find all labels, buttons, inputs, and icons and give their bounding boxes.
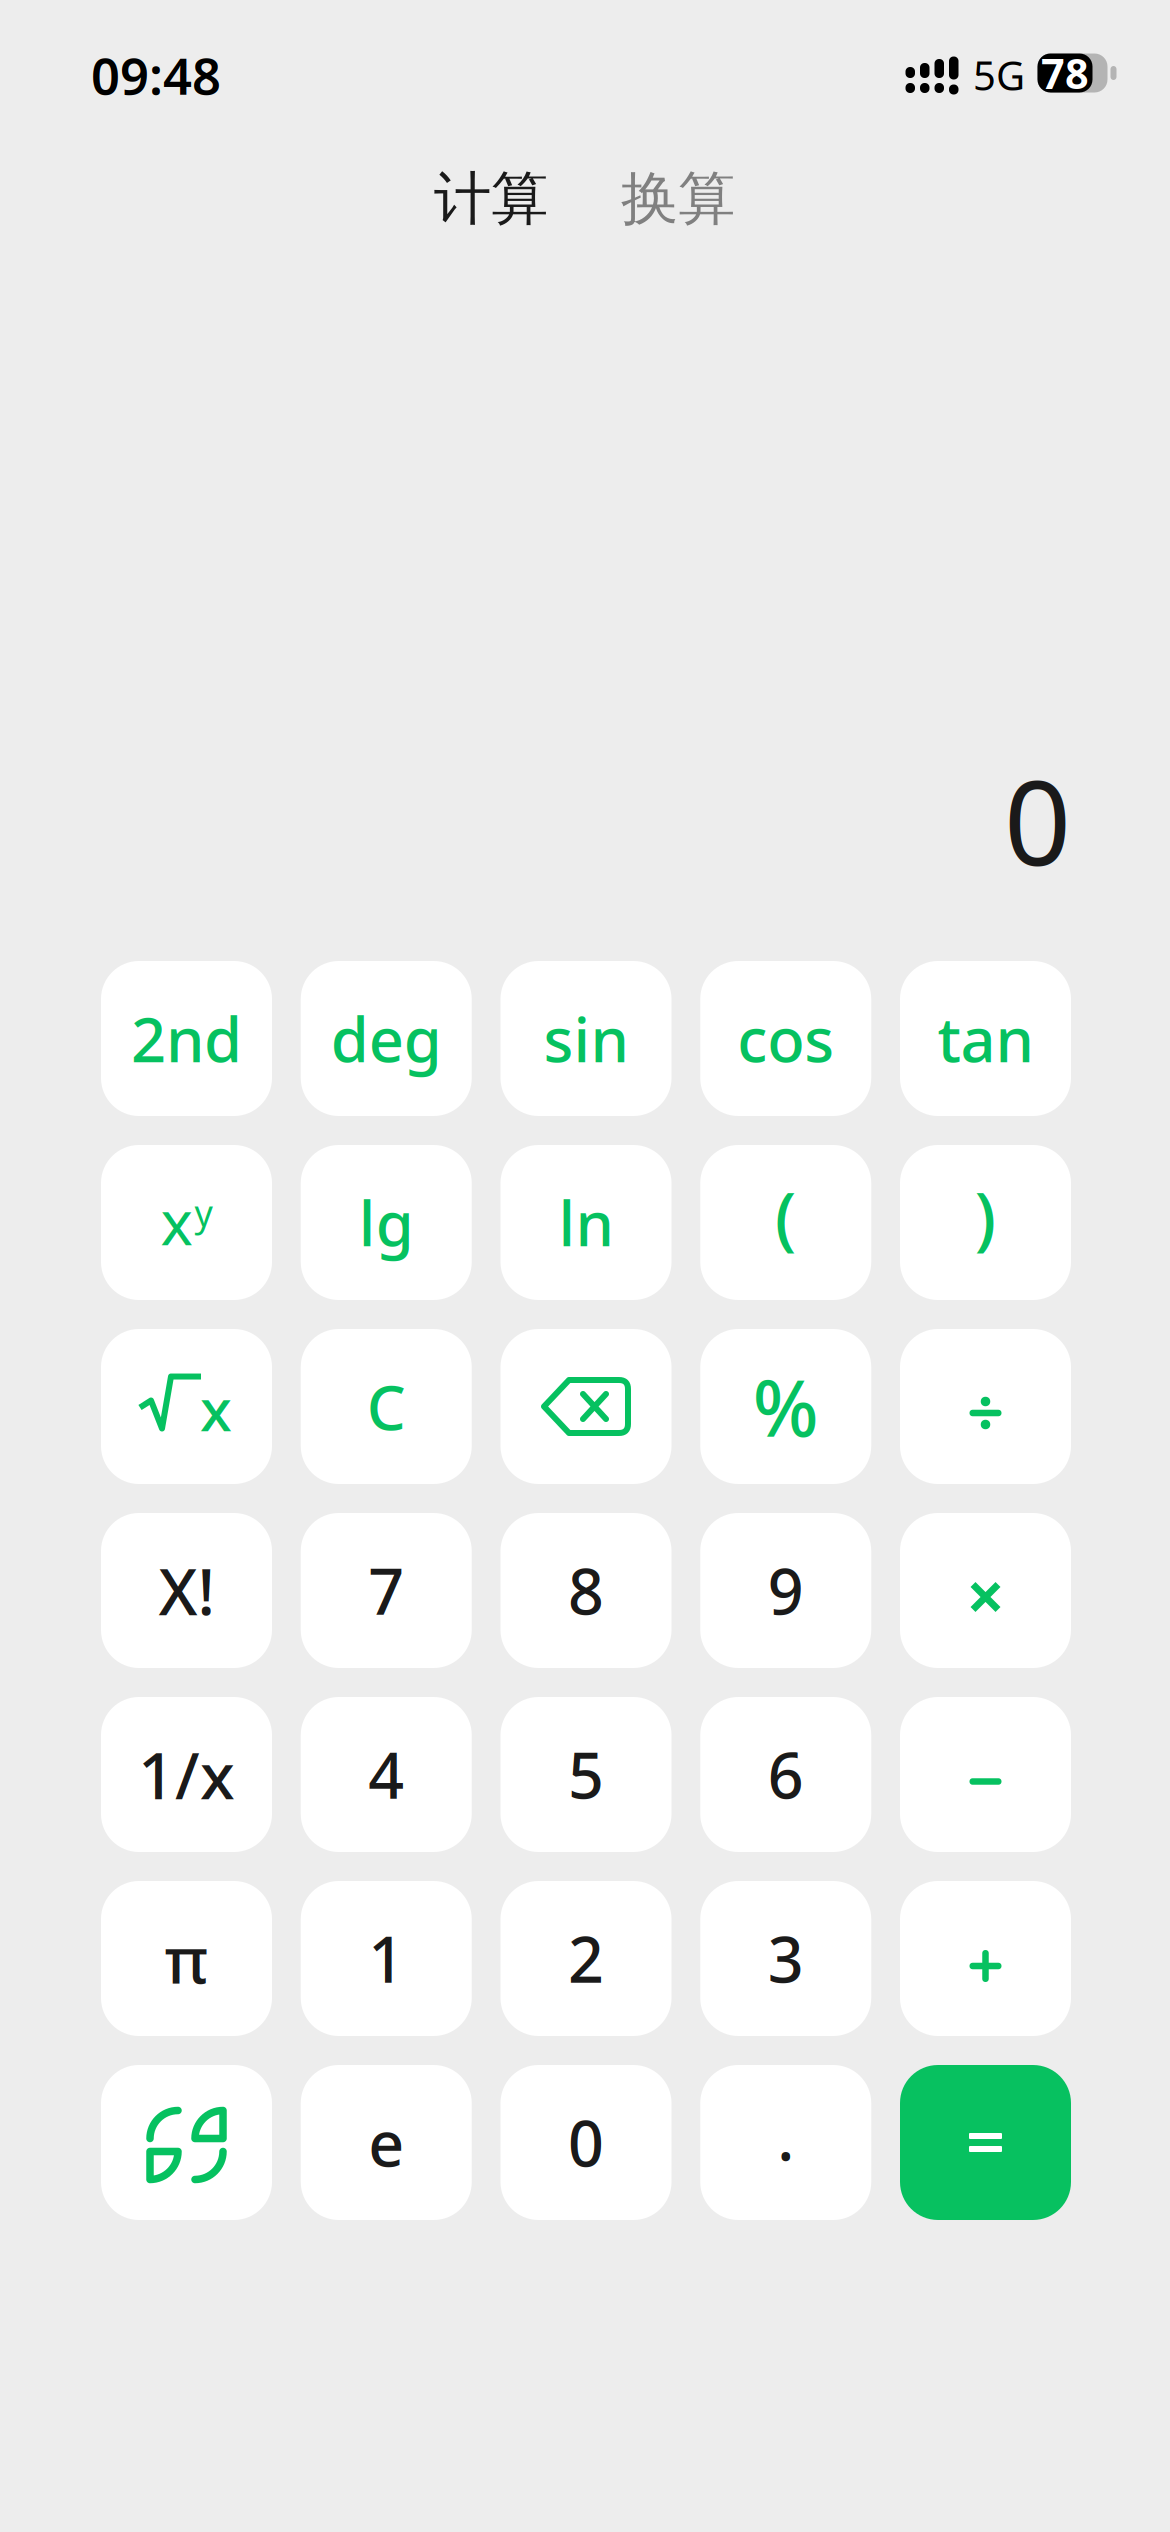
staticText: sin	[543, 998, 628, 1079]
button[interactable]: 7	[301, 1513, 472, 1668]
staticText: X!	[158, 1548, 214, 1633]
button[interactable]: Subtract	[900, 1697, 1071, 1852]
button[interactable]: %	[700, 1329, 871, 1484]
staticText: 4	[368, 1733, 404, 1816]
staticText: 6	[768, 1733, 804, 1816]
button[interactable]: )	[900, 1145, 1071, 1300]
button[interactable]: lg	[301, 1145, 472, 1300]
button[interactable]: 4	[301, 1697, 472, 1852]
button[interactable]: 计算	[421, 154, 561, 244]
button[interactable]: 8	[500, 1513, 671, 1668]
staticText: ln	[558, 1182, 613, 1263]
button[interactable]: 6	[700, 1697, 871, 1852]
staticText: 1/x	[138, 1732, 235, 1817]
button[interactable]: .	[700, 2065, 871, 2220]
staticText: 0	[568, 2101, 604, 2184]
button[interactable]: Add	[900, 1881, 1071, 2036]
button[interactable]: C	[301, 1329, 472, 1484]
staticText: tan	[937, 998, 1033, 1079]
button[interactable]: Scan	[101, 2065, 272, 2220]
staticText: 0	[1004, 742, 1071, 898]
button[interactable]: 1/x	[101, 1697, 272, 1852]
staticText: (	[775, 1169, 797, 1262]
button[interactable]: Equals	[900, 2065, 1071, 2220]
button[interactable]: π	[101, 1881, 272, 2036]
staticText: cos	[737, 998, 834, 1079]
button[interactable]: tan	[900, 961, 1071, 1116]
button[interactable]: 1	[301, 1881, 472, 2036]
button[interactable]: Multiply	[900, 1513, 1071, 1668]
staticText: 5	[568, 1733, 604, 1816]
staticText: x	[160, 1181, 192, 1262]
staticText: π	[164, 1916, 208, 2001]
button[interactable]: X!	[101, 1513, 272, 1668]
staticText: e	[368, 2101, 404, 2184]
staticText: 换算	[621, 164, 735, 234]
button[interactable]: Delete	[500, 1329, 671, 1484]
staticText: 8	[568, 1549, 604, 1632]
button[interactable]: 3	[700, 1881, 871, 2036]
staticText: 2nd	[131, 998, 242, 1079]
button[interactable]: 2	[500, 1881, 671, 2036]
button[interactable]: 9	[700, 1513, 871, 1668]
button[interactable]: deg	[301, 961, 472, 1116]
staticText: 09:48	[91, 41, 221, 109]
button[interactable]: (	[700, 1145, 871, 1300]
staticText: 5G	[973, 48, 1025, 101]
staticText: 1	[368, 1917, 404, 2000]
staticText: y	[194, 1189, 212, 1236]
staticText: lg	[359, 1182, 414, 1263]
staticText: 78	[1041, 46, 1089, 100]
staticText: .	[777, 2095, 794, 2178]
button[interactable]: 0	[500, 2065, 671, 2220]
staticText: 计算	[434, 164, 548, 234]
staticText: deg	[331, 998, 442, 1079]
button[interactable]: cos	[700, 961, 871, 1116]
staticText: 2	[568, 1917, 604, 2000]
staticText: 9	[768, 1549, 804, 1632]
button[interactable]: sin	[500, 961, 671, 1116]
staticText: )	[974, 1169, 996, 1262]
staticText: x	[200, 1369, 232, 1447]
button[interactable]: x to the power of y	[101, 1145, 272, 1300]
button[interactable]: 换算	[608, 154, 748, 244]
button[interactable]: Divide	[900, 1329, 1071, 1484]
button[interactable]: 2nd	[101, 961, 272, 1116]
button[interactable]: ln	[500, 1145, 671, 1300]
button[interactable]: 5	[500, 1697, 671, 1852]
button[interactable]: e	[301, 2065, 472, 2220]
staticText: 3	[768, 1917, 804, 2000]
staticText: C	[367, 1366, 406, 1447]
staticText: %	[753, 1355, 819, 1458]
staticText: 7	[368, 1549, 404, 1632]
button[interactable]: Square root	[101, 1329, 272, 1484]
